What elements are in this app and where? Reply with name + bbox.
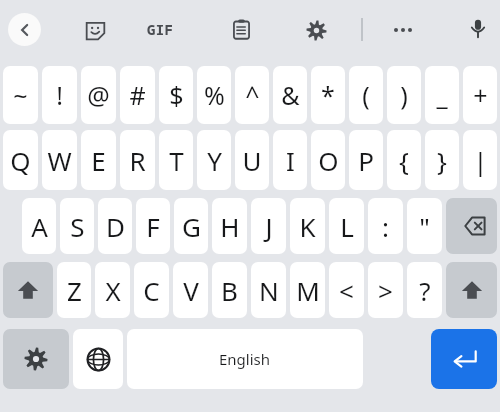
button[interactable]: C: [134, 262, 169, 318]
staticText: *: [321, 78, 335, 112]
staticText: #: [129, 78, 146, 112]
staticText: G: [182, 209, 201, 244]
staticText: K: [299, 209, 316, 244]
staticText: }: [437, 143, 447, 178]
button[interactable]: ~: [3, 66, 38, 124]
staticText: <: [339, 273, 354, 308]
staticText: ): [400, 78, 408, 112]
button[interactable]: >: [368, 262, 403, 318]
staticText: S: [70, 209, 85, 244]
staticText: {: [399, 143, 409, 178]
staticText: E: [91, 143, 106, 178]
button[interactable]: Y: [197, 130, 231, 190]
staticText: %: [204, 78, 225, 112]
button[interactable]: P: [349, 130, 383, 190]
staticText: A: [31, 209, 48, 244]
button[interactable]: M: [290, 262, 325, 318]
button[interactable]: Enter: [431, 329, 497, 389]
button[interactable]: <: [329, 262, 364, 318]
button[interactable]: O: [311, 130, 345, 190]
button[interactable]: _: [425, 66, 459, 124]
button[interactable]: ): [387, 66, 421, 124]
staticText: P: [358, 143, 374, 178]
button[interactable]: |: [463, 130, 497, 190]
button[interactable]: {: [387, 130, 421, 190]
staticText: ~: [13, 78, 28, 112]
button[interactable]: X: [95, 262, 130, 318]
button[interactable]: T: [159, 130, 193, 190]
staticText: R: [129, 143, 146, 178]
staticText: L: [340, 209, 354, 244]
staticText: N: [259, 273, 279, 308]
staticText: |: [473, 143, 488, 178]
staticText: GIF: [147, 20, 174, 39]
button[interactable]: Q: [3, 130, 38, 190]
button[interactable]: &: [273, 66, 307, 124]
button[interactable]: Voice input: [465, 15, 491, 41]
button[interactable]: W: [42, 130, 77, 190]
button[interactable]: I: [273, 130, 307, 190]
button[interactable]: D: [98, 198, 132, 254]
staticText: &: [281, 78, 300, 112]
staticText: >: [378, 273, 393, 308]
button[interactable]: F: [136, 198, 170, 254]
button[interactable]: Change language: [73, 329, 123, 389]
staticText: _: [436, 78, 448, 112]
staticText: ": [419, 209, 430, 244]
button[interactable]: L: [329, 198, 364, 254]
staticText: W: [47, 143, 72, 178]
button[interactable]: ": [407, 198, 442, 254]
button[interactable]: U: [235, 130, 269, 190]
button[interactable]: J: [251, 198, 286, 254]
button[interactable]: GIF: [140, 17, 180, 41]
button[interactable]: ?: [407, 262, 442, 318]
button[interactable]: B: [212, 262, 247, 318]
staticText: Y: [207, 143, 222, 178]
button[interactable]: A: [22, 198, 56, 254]
button[interactable]: Backspace: [446, 198, 497, 254]
staticText: M: [296, 273, 320, 308]
button[interactable]: Settings: [303, 17, 329, 43]
button[interactable]: G: [174, 198, 208, 254]
button[interactable]: :: [368, 198, 403, 254]
button[interactable]: *: [311, 66, 345, 124]
staticText: T: [169, 143, 184, 178]
button[interactable]: Shift: [3, 262, 53, 318]
staticText: Z: [67, 273, 82, 308]
staticText: B: [221, 273, 238, 308]
staticText: :: [382, 209, 389, 244]
button[interactable]: #: [120, 66, 155, 124]
button[interactable]: R: [120, 130, 155, 190]
button[interactable]: K: [290, 198, 325, 254]
staticText: F: [146, 209, 160, 244]
button[interactable]: H: [212, 198, 247, 254]
button[interactable]: @: [81, 66, 116, 124]
button[interactable]: !: [42, 66, 77, 124]
button[interactable]: English: [127, 329, 363, 389]
button[interactable]: Z: [57, 262, 91, 318]
button[interactable]: Stickers: [82, 17, 108, 43]
staticText: I: [286, 143, 295, 178]
button[interactable]: Shift: [446, 262, 497, 318]
staticText: H: [220, 209, 240, 244]
button[interactable]: N: [251, 262, 286, 318]
staticText: J: [265, 209, 273, 244]
staticText: English: [219, 349, 271, 369]
button[interactable]: Keyboard settings: [3, 329, 69, 389]
button[interactable]: (: [349, 66, 383, 124]
button[interactable]: +: [463, 66, 497, 124]
staticText: Q: [10, 143, 31, 178]
button[interactable]: E: [81, 130, 116, 190]
button[interactable]: %: [197, 66, 231, 124]
staticText: $: [169, 78, 184, 112]
button[interactable]: }: [425, 130, 459, 190]
button[interactable]: More options: [389, 18, 417, 42]
staticText: X: [105, 273, 121, 308]
staticText: +: [473, 78, 488, 112]
button[interactable]: ^: [235, 66, 269, 124]
button[interactable]: $: [159, 66, 193, 124]
button[interactable]: V: [173, 262, 208, 318]
button[interactable]: Clipboard: [228, 16, 255, 43]
button[interactable]: S: [60, 198, 94, 254]
button[interactable]: Back: [8, 13, 41, 46]
